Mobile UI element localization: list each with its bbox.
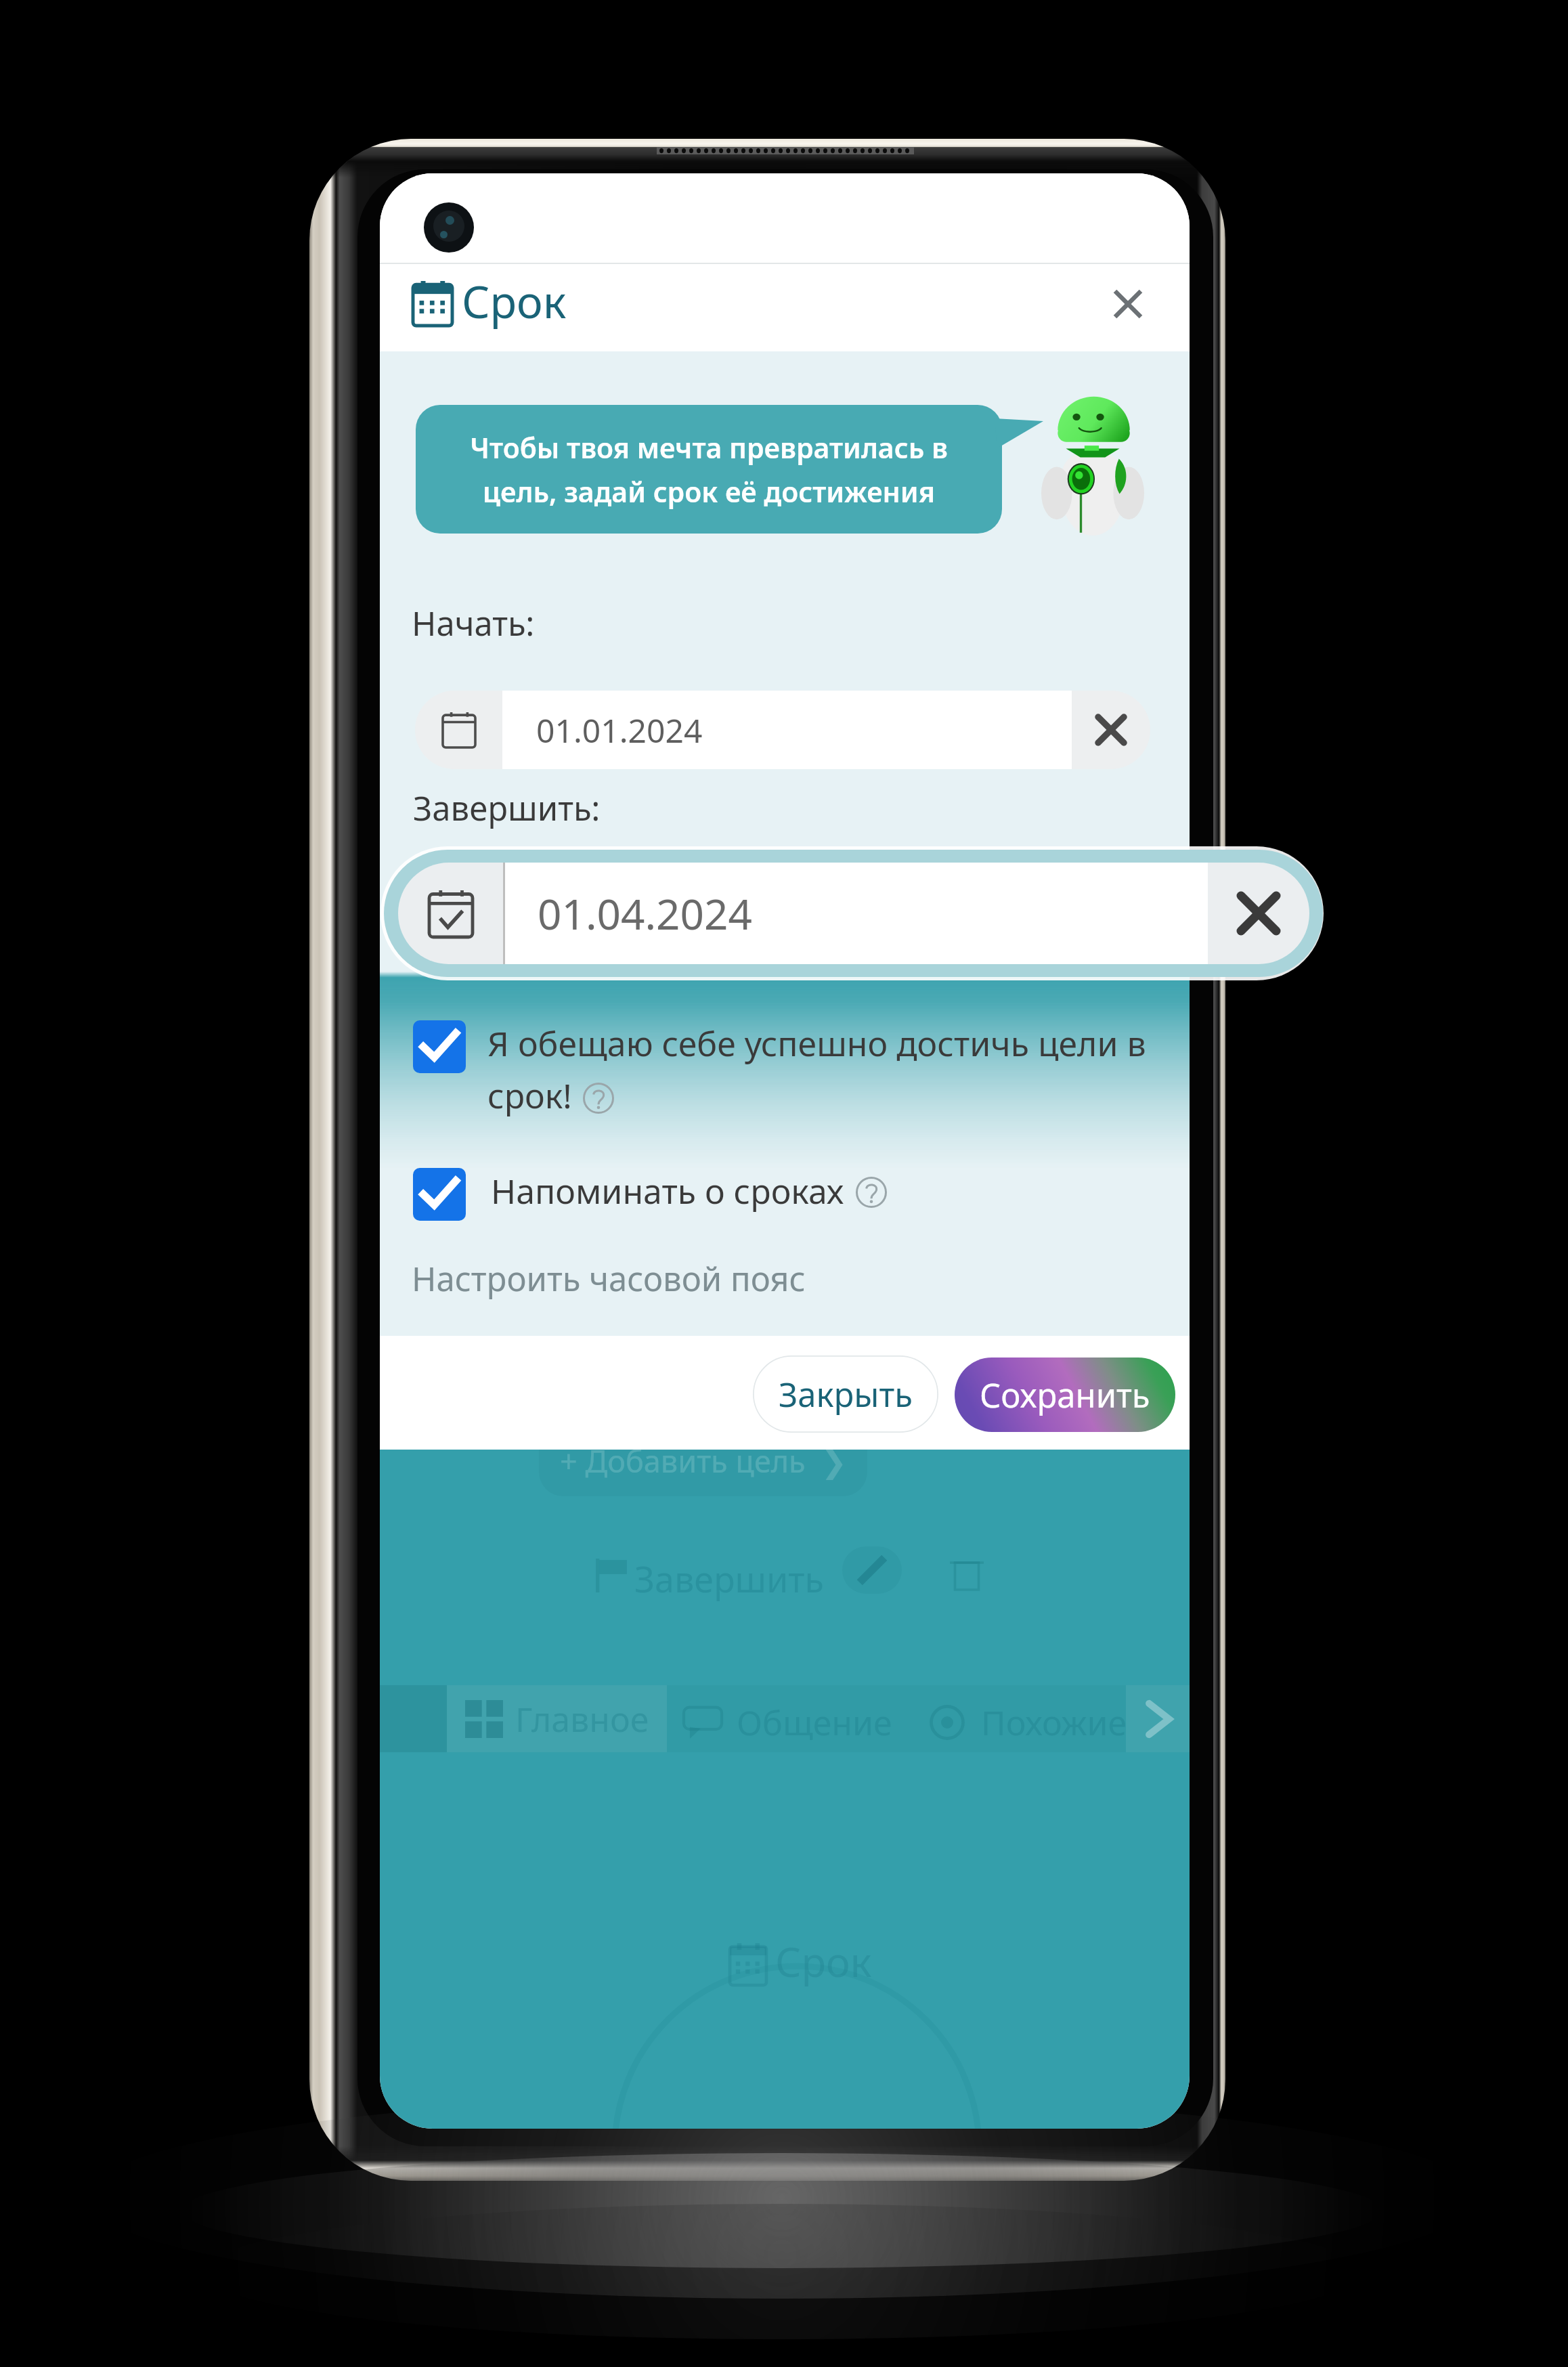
button[interactable]: + Добавить цель ❯	[539, 1404, 867, 1496]
button[interactable]: Clear start date	[1072, 691, 1150, 769]
staticText: Общение	[737, 1699, 892, 1745]
button[interactable]: 01.01.2024	[415, 691, 1150, 769]
staticText: Срок	[462, 272, 567, 332]
button[interactable]: Toggle checkbox	[413, 1168, 466, 1221]
button[interactable]: Настроить часовой пояс	[412, 1256, 806, 1301]
button[interactable]: Clear end date	[1208, 863, 1309, 964]
button[interactable]: Toggle checkbox	[413, 1020, 466, 1073]
button[interactable]: Close dialog	[1090, 266, 1166, 342]
button[interactable]: Похожие	[928, 1699, 1127, 1745]
staticText: 01.01.2024	[536, 708, 703, 752]
button[interactable]: More tabs	[1126, 1685, 1190, 1752]
staticText: Завершить:	[413, 785, 601, 831]
button[interactable]: Закрыть	[753, 1355, 938, 1433]
button[interactable]: Delete goal	[942, 1550, 991, 1598]
button[interactable]: Главное	[447, 1685, 667, 1752]
button[interactable]: Общение	[684, 1699, 892, 1745]
staticText: Чтобы твоя мечта превратилась в цель, за…	[470, 429, 948, 511]
staticText: Закрыть	[779, 1372, 913, 1417]
button[interactable]: Edit goal	[842, 1546, 902, 1594]
staticText: Главное	[515, 1696, 649, 1742]
staticText: + Добавить цель ❯	[560, 1440, 847, 1481]
staticText: Начать:	[412, 601, 535, 646]
button[interactable]: Сохранить	[955, 1358, 1175, 1432]
staticText: Завершить	[634, 1555, 824, 1602]
staticText: Напоминать о сроках	[491, 1168, 844, 1214]
staticText: Сохранить	[980, 1372, 1150, 1418]
staticText: Похожие	[981, 1699, 1127, 1745]
button[interactable]: 01.04.2024	[398, 863, 1309, 964]
staticText: срок!	[487, 1072, 572, 1119]
staticText: Срок	[775, 1934, 872, 1989]
staticText: 01.04.2024	[538, 885, 752, 942]
staticText: Я обещаю себе успешно достичь цели в	[487, 1020, 1146, 1066]
